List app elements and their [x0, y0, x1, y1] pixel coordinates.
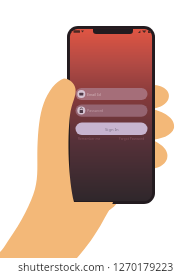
staticText: Remember me	[78, 137, 101, 141]
staticText: Email Id	[87, 92, 101, 97]
staticText: shutterstock.com · 1270179223	[18, 260, 174, 274]
staticText: Forgot Password	[119, 137, 145, 141]
button[interactable]: Forgot Password	[119, 137, 145, 141]
button[interactable]: Sign In	[76, 123, 148, 136]
button[interactable]: Remember me	[78, 137, 101, 141]
staticText: Password	[87, 108, 104, 113]
button[interactable]: Password	[76, 104, 148, 116]
button[interactable]: Email Id	[76, 88, 148, 100]
staticText: Sign In	[105, 127, 119, 133]
